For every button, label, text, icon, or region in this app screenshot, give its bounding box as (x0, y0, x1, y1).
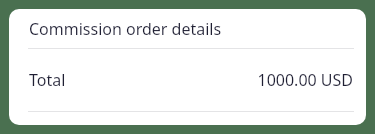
staticText: Total (29, 69, 66, 91)
staticText: 1000.00 USD (257, 69, 353, 91)
staticText: Commission order details (29, 18, 222, 40)
button[interactable]: Total (9, 49, 366, 111)
button[interactable]: Commission order details (9, 9, 366, 48)
